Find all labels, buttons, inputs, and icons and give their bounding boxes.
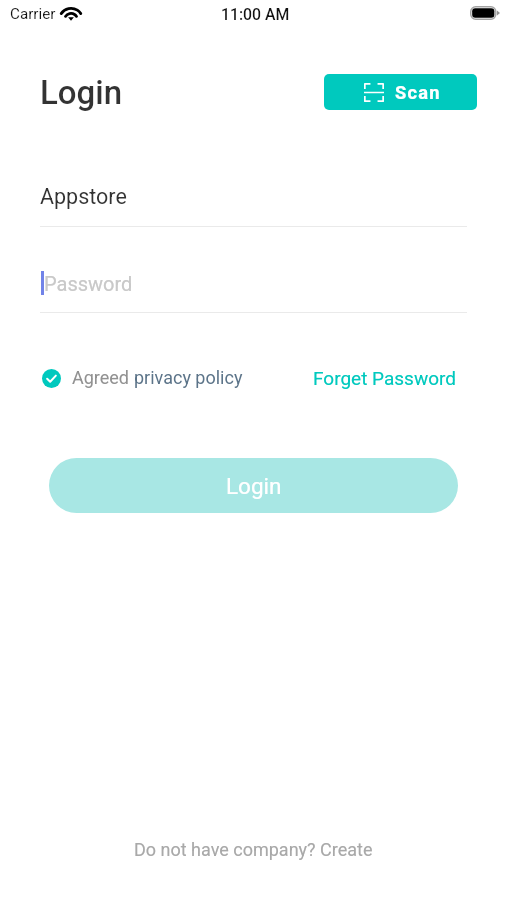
staticText: Login xyxy=(40,73,123,112)
staticText: Carrier xyxy=(10,5,56,23)
button[interactable]: Forget Password xyxy=(313,367,457,389)
staticText: Password xyxy=(44,272,133,295)
button[interactable]: Appstore xyxy=(40,180,467,227)
staticText: Login xyxy=(226,473,282,499)
button[interactable]: Scan xyxy=(324,74,477,110)
button[interactable]: Login xyxy=(49,458,458,513)
staticText: Scan xyxy=(395,82,441,103)
button[interactable]: Do not have company? Create xyxy=(134,839,373,860)
staticText: privacy policy xyxy=(134,367,243,388)
staticText: 11:00 AM xyxy=(221,5,290,24)
staticText: Appstore xyxy=(40,184,127,209)
button[interactable]: Password xyxy=(40,266,467,313)
staticText: Agreed xyxy=(72,367,134,388)
other: Agreed to privacy policy xyxy=(42,369,61,388)
button[interactable]: Agreed to privacy policy xyxy=(42,367,243,388)
